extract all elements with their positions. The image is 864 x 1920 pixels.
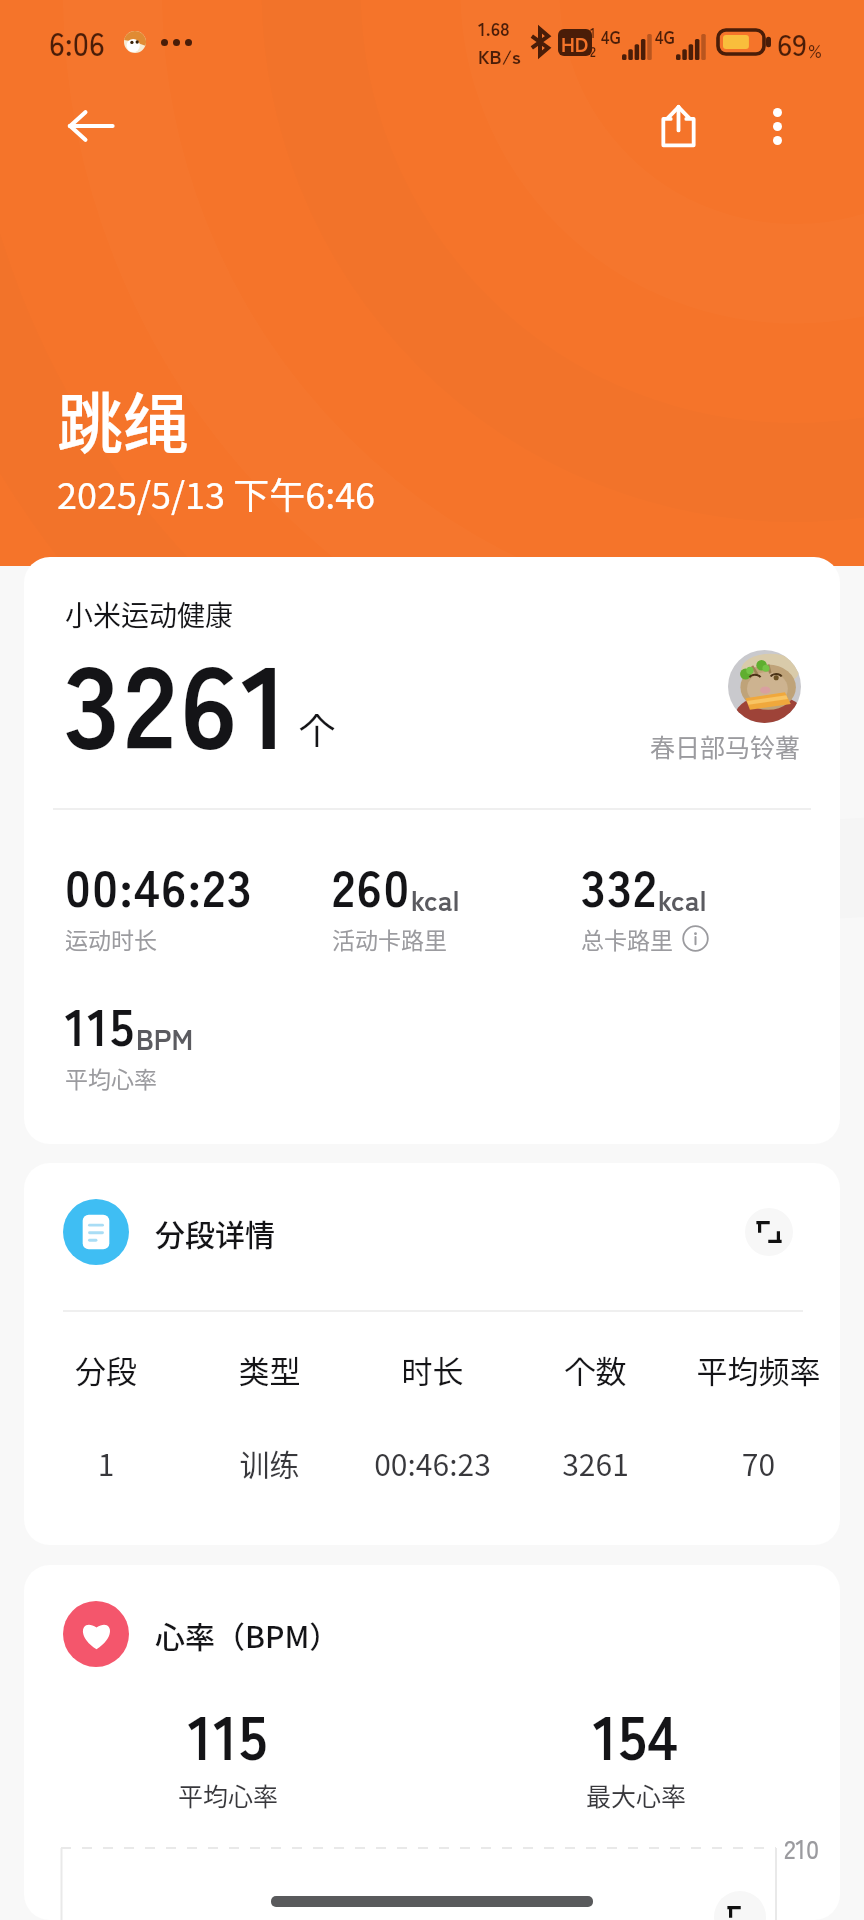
button[interactable]: Share [643, 91, 713, 161]
staticText: 平均频率 [677, 1347, 840, 1392]
staticText: 分段详情 [155, 1211, 275, 1254]
staticText: 260 [332, 848, 411, 922]
staticText: 小米运动健康 [65, 594, 234, 635]
staticText: 69 [777, 20, 808, 65]
staticText: 个数 [514, 1347, 677, 1392]
staticText: 00:46:23 [351, 1441, 514, 1484]
staticText: 个 [299, 702, 336, 754]
staticText: 总卡路里 [581, 922, 673, 955]
staticText: 3261 [64, 614, 293, 782]
staticText: 6:06 [49, 19, 105, 65]
staticText: 115 [188, 1690, 269, 1777]
staticText: 训练 [188, 1441, 351, 1484]
staticText: 332 [581, 848, 658, 922]
button[interactable]: Expand heart rate chart [714, 1891, 766, 1920]
staticText: 70 [677, 1441, 840, 1484]
staticText: KB/s [478, 42, 521, 70]
staticText: 2 [590, 42, 596, 61]
staticText: % [808, 37, 822, 63]
staticText: 分段 [24, 1347, 188, 1392]
staticText: BPM [136, 1018, 194, 1059]
staticText: HD [561, 29, 589, 56]
staticText: 00:46:23 [65, 848, 254, 922]
staticText: 115 [65, 987, 136, 1061]
staticText: 4G [601, 24, 621, 49]
button[interactable]: More options [742, 91, 812, 161]
staticText: kcal [658, 879, 707, 920]
staticText: 时长 [351, 1347, 514, 1392]
staticText: 跳绳 [57, 371, 189, 467]
staticText: kcal [411, 879, 460, 920]
staticText: 1 [24, 1441, 188, 1484]
staticText: 4G [655, 24, 675, 49]
button[interactable]: Back [55, 91, 125, 161]
staticText: 运动时长 [65, 922, 157, 955]
staticText: 1.68 [478, 14, 510, 42]
button[interactable]: Expand segment details [745, 1208, 793, 1256]
staticText: 类型 [188, 1347, 351, 1392]
staticText: 210 [784, 1829, 820, 1867]
staticText: 最大心率 [586, 1777, 687, 1813]
staticText: 春日部马铃薯 [650, 728, 801, 764]
staticText: 心率（BPM） [155, 1613, 340, 1656]
staticText: 154 [593, 1690, 679, 1777]
staticText: 3261 [514, 1441, 677, 1484]
staticText: 活动卡路里 [332, 922, 447, 955]
staticText: 1 [590, 23, 596, 42]
staticText: 2025/5/13 下午6:46 [57, 467, 376, 519]
staticText: 平均心率 [178, 1777, 279, 1813]
staticText: 平均心率 [65, 1061, 157, 1094]
